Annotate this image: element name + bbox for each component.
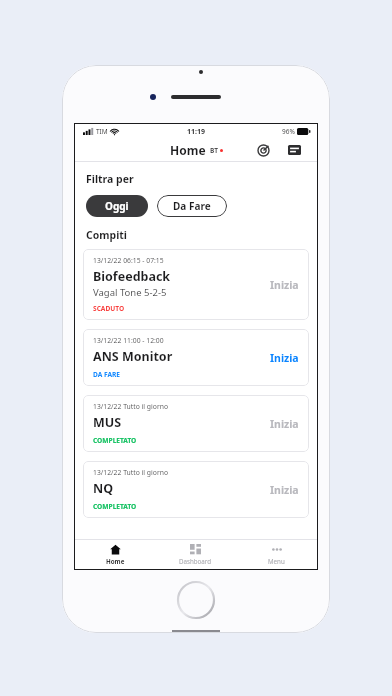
staticText: NQ <box>93 480 114 497</box>
button[interactable]: Da Fare <box>157 195 227 217</box>
staticText: Compiti <box>86 228 128 242</box>
staticText: 13/12/22 11:00 - 12:00 <box>93 336 164 345</box>
staticText: Oggi <box>105 199 129 213</box>
button[interactable]: 13/12/22 11:00 - 12:00 <box>83 329 309 386</box>
staticText: 13/12/22 06:15 - 07:15 <box>93 256 164 265</box>
staticText: ANS Monitor <box>93 348 173 365</box>
staticText: Home <box>106 557 125 565</box>
staticText: Inizia <box>270 483 299 497</box>
staticText: Dashboard <box>179 557 212 565</box>
staticText: 13/12/22 Tutto il giorno <box>93 402 169 411</box>
staticText: Inizia <box>270 278 299 292</box>
staticText: Menu <box>268 557 285 565</box>
staticText: Biofeedback <box>93 268 171 285</box>
button[interactable]: 13/12/22 Tutto il giorno <box>83 395 309 452</box>
staticText: COMPLETATO <box>93 502 137 511</box>
button[interactable]: Obiettivi <box>253 140 273 160</box>
button[interactable]: Inizia <box>270 417 299 431</box>
staticText: SCADUTO <box>93 304 125 313</box>
staticText: 96% <box>282 127 295 136</box>
button[interactable]: Scheda <box>284 140 304 160</box>
staticText: Inizia <box>270 417 299 431</box>
button[interactable]: Oggi <box>86 195 148 217</box>
button[interactable]: 13/12/22 06:15 - 07:15 <box>83 249 309 320</box>
button[interactable]: Home <box>75 540 155 569</box>
staticText: MUS <box>93 414 122 431</box>
staticText: Home <box>170 142 206 158</box>
staticText: 11:19 <box>187 127 205 137</box>
button[interactable]: Menu <box>236 540 317 569</box>
button[interactable]: Inizia <box>270 278 299 292</box>
staticText: Vagal Tone 5-2-5 <box>93 286 167 299</box>
staticText: Inizia <box>270 351 299 365</box>
staticText: Da Fare <box>173 199 211 213</box>
button[interactable]: Dashboard <box>155 540 236 569</box>
staticText: TIM <box>96 127 108 136</box>
button[interactable]: Inizia <box>270 351 299 365</box>
button[interactable]: 13/12/22 Tutto il giorno <box>83 461 309 518</box>
button[interactable]: Inizia <box>270 483 299 497</box>
staticText: Filtra per <box>86 172 134 186</box>
staticText: 13/12/22 Tutto il giorno <box>93 468 169 477</box>
staticText: DA FARE <box>93 370 121 379</box>
staticText: BT <box>210 146 219 155</box>
staticText: COMPLETATO <box>93 436 137 445</box>
